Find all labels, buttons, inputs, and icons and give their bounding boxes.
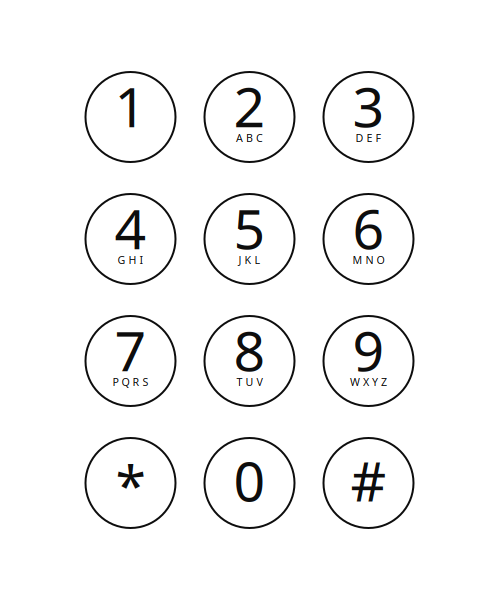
staticText: 1 <box>114 68 146 143</box>
button[interactable]: 8 TUV <box>204 316 294 406</box>
button[interactable]: 1 <box>85 72 175 162</box>
staticText: 8 <box>233 312 265 387</box>
button[interactable]: 9 WXYZ <box>323 316 413 406</box>
staticText: W X Y Z <box>350 374 387 389</box>
staticText: 5 <box>233 190 265 265</box>
button[interactable]: 0 <box>204 438 294 528</box>
button[interactable]: 4 GHI <box>85 194 175 284</box>
staticText: 6 <box>352 190 384 265</box>
staticText: G H I <box>117 252 143 267</box>
staticText: P Q R S <box>112 374 148 389</box>
staticText: 9 <box>352 312 384 387</box>
button[interactable]: 6 MNO <box>323 194 413 284</box>
staticText: 7 <box>114 312 146 387</box>
staticText: 0 <box>233 442 265 518</box>
staticText: 3 <box>352 68 384 143</box>
staticText: A B C <box>236 130 263 145</box>
staticText: 2 <box>233 68 265 143</box>
button[interactable]: 7 PQRS <box>85 316 175 406</box>
staticText: * <box>115 447 145 522</box>
staticText: # <box>350 442 386 518</box>
staticText: 4 <box>114 190 146 265</box>
button[interactable]: Pound <box>323 438 413 528</box>
button[interactable]: Star <box>85 438 175 528</box>
staticText: J K L <box>238 252 260 267</box>
button[interactable]: 3 DEF <box>323 72 413 162</box>
staticText: T U V <box>236 374 262 389</box>
button[interactable]: 5 JKL <box>204 194 294 284</box>
staticText: M N O <box>352 252 384 267</box>
staticText: D E F <box>355 130 381 145</box>
button[interactable]: 2 ABC <box>204 72 294 162</box>
